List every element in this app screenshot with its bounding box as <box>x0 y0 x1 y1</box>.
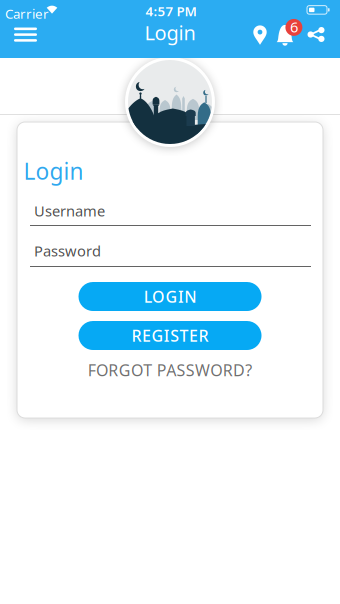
staticText: Username <box>34 201 105 220</box>
staticText: 6 <box>290 17 298 37</box>
button[interactable]: Menu <box>7 21 44 48</box>
staticText: FORGOT PASSWORD? <box>88 359 252 381</box>
button[interactable]: LOGIN <box>78 282 261 311</box>
staticText: REGISTER <box>132 325 208 346</box>
staticText: Carrier <box>5 5 49 22</box>
button[interactable]: Notifications <box>274 20 300 45</box>
staticText: Login <box>144 19 195 46</box>
button[interactable]: Location <box>249 21 271 49</box>
button[interactable]: Password <box>30 241 311 268</box>
button[interactable]: REGISTER <box>78 321 261 350</box>
staticText: Password <box>34 241 101 260</box>
button[interactable]: Username <box>30 200 311 227</box>
staticText: Login <box>23 156 83 186</box>
button[interactable]: Share <box>304 24 327 45</box>
staticText: 4:57 PM <box>145 2 196 20</box>
button[interactable]: FORGOT PASSWORD? <box>17 362 323 378</box>
staticText: LOGIN <box>144 286 196 307</box>
